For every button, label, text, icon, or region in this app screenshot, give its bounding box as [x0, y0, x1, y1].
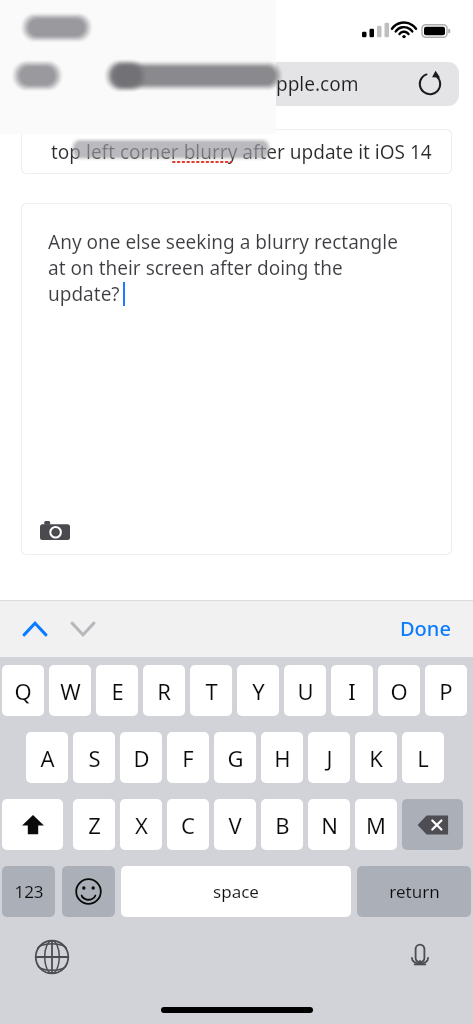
- button[interactable]: X: [120, 799, 162, 850]
- button[interactable]: R: [143, 665, 185, 716]
- button[interactable]: V: [214, 799, 256, 850]
- staticText: update?: [48, 281, 120, 307]
- button[interactable]: A: [26, 732, 68, 783]
- button[interactable]: S: [73, 732, 115, 783]
- staticText: K: [369, 743, 383, 773]
- button[interactable]: Previous field: [14, 608, 56, 650]
- button[interactable]: Done: [394, 609, 457, 648]
- button[interactable]: Shift: [2, 799, 63, 850]
- button[interactable]: C: [167, 799, 209, 850]
- staticText: T: [205, 676, 218, 706]
- button[interactable]: Next field: [62, 608, 104, 650]
- button[interactable]: return: [357, 866, 471, 917]
- button[interactable]: H: [261, 732, 303, 783]
- staticText: H: [274, 743, 291, 773]
- button[interactable]: Insert photo: [40, 519, 70, 543]
- staticText: Y: [252, 676, 265, 706]
- button[interactable]: Reload: [413, 67, 447, 101]
- staticText: B: [275, 810, 290, 840]
- staticText: W: [60, 676, 81, 706]
- button[interactable]: T: [190, 665, 232, 716]
- button[interactable]: E: [96, 665, 138, 716]
- staticText: space: [213, 880, 259, 903]
- button[interactable]: D: [120, 732, 162, 783]
- button[interactable]: F: [167, 732, 209, 783]
- button[interactable]: O: [378, 665, 420, 716]
- button[interactable]: L: [402, 732, 444, 783]
- staticText: D: [133, 743, 150, 773]
- staticText: return: [389, 880, 440, 903]
- staticText: V: [228, 810, 242, 840]
- button[interactable]: Change keyboard: [30, 935, 74, 979]
- button[interactable]: I: [331, 665, 373, 716]
- staticText: S: [88, 743, 101, 773]
- staticText: Done: [400, 615, 451, 642]
- button[interactable]: M: [355, 799, 397, 850]
- button[interactable]: K: [355, 732, 397, 783]
- button[interactable]: J: [308, 732, 350, 783]
- button[interactable]: Y: [237, 665, 279, 716]
- staticText: P: [439, 676, 453, 706]
- staticText: C: [181, 810, 195, 840]
- button[interactable]: space: [121, 866, 351, 917]
- staticText: Q: [14, 676, 32, 706]
- button[interactable]: top left corner blurry after update it i…: [21, 129, 452, 174]
- staticText: at on their screen after doing the: [48, 255, 343, 281]
- button[interactable]: B: [261, 799, 303, 850]
- staticText: Z: [88, 810, 101, 840]
- staticText: Any one else seeking a blurry rectangle: [48, 229, 398, 255]
- button[interactable]: Backspace: [402, 799, 463, 850]
- staticText: pple.com: [276, 71, 359, 97]
- button[interactable]: Q: [2, 665, 44, 716]
- staticText: I: [348, 676, 356, 706]
- staticText: N: [321, 810, 338, 840]
- staticText: G: [227, 743, 244, 773]
- button[interactable]: Emoji: [62, 866, 115, 917]
- staticText: R: [157, 676, 171, 706]
- button[interactable]: pple.com: [14, 62, 459, 106]
- button[interactable]: W: [49, 665, 91, 716]
- button[interactable]: Dictate: [398, 935, 442, 979]
- staticText: M: [366, 810, 386, 840]
- staticText: X: [135, 810, 148, 840]
- staticText: A: [40, 743, 55, 773]
- staticText: O: [390, 676, 408, 706]
- staticText: U: [297, 676, 314, 706]
- staticText: J: [326, 743, 333, 773]
- button[interactable]: U: [284, 665, 326, 716]
- button[interactable]: Any one else seeking a blurry rectangle: [21, 203, 452, 555]
- staticText: L: [417, 743, 429, 773]
- button[interactable]: N: [308, 799, 350, 850]
- button[interactable]: 123: [2, 866, 55, 917]
- button[interactable]: Z: [73, 799, 115, 850]
- staticText: top left corner blurry after update it i…: [51, 139, 432, 165]
- staticText: F: [182, 743, 194, 773]
- staticText: 123: [14, 880, 44, 903]
- button[interactable]: G: [214, 732, 256, 783]
- staticText: E: [111, 676, 124, 706]
- button[interactable]: P: [425, 665, 467, 716]
